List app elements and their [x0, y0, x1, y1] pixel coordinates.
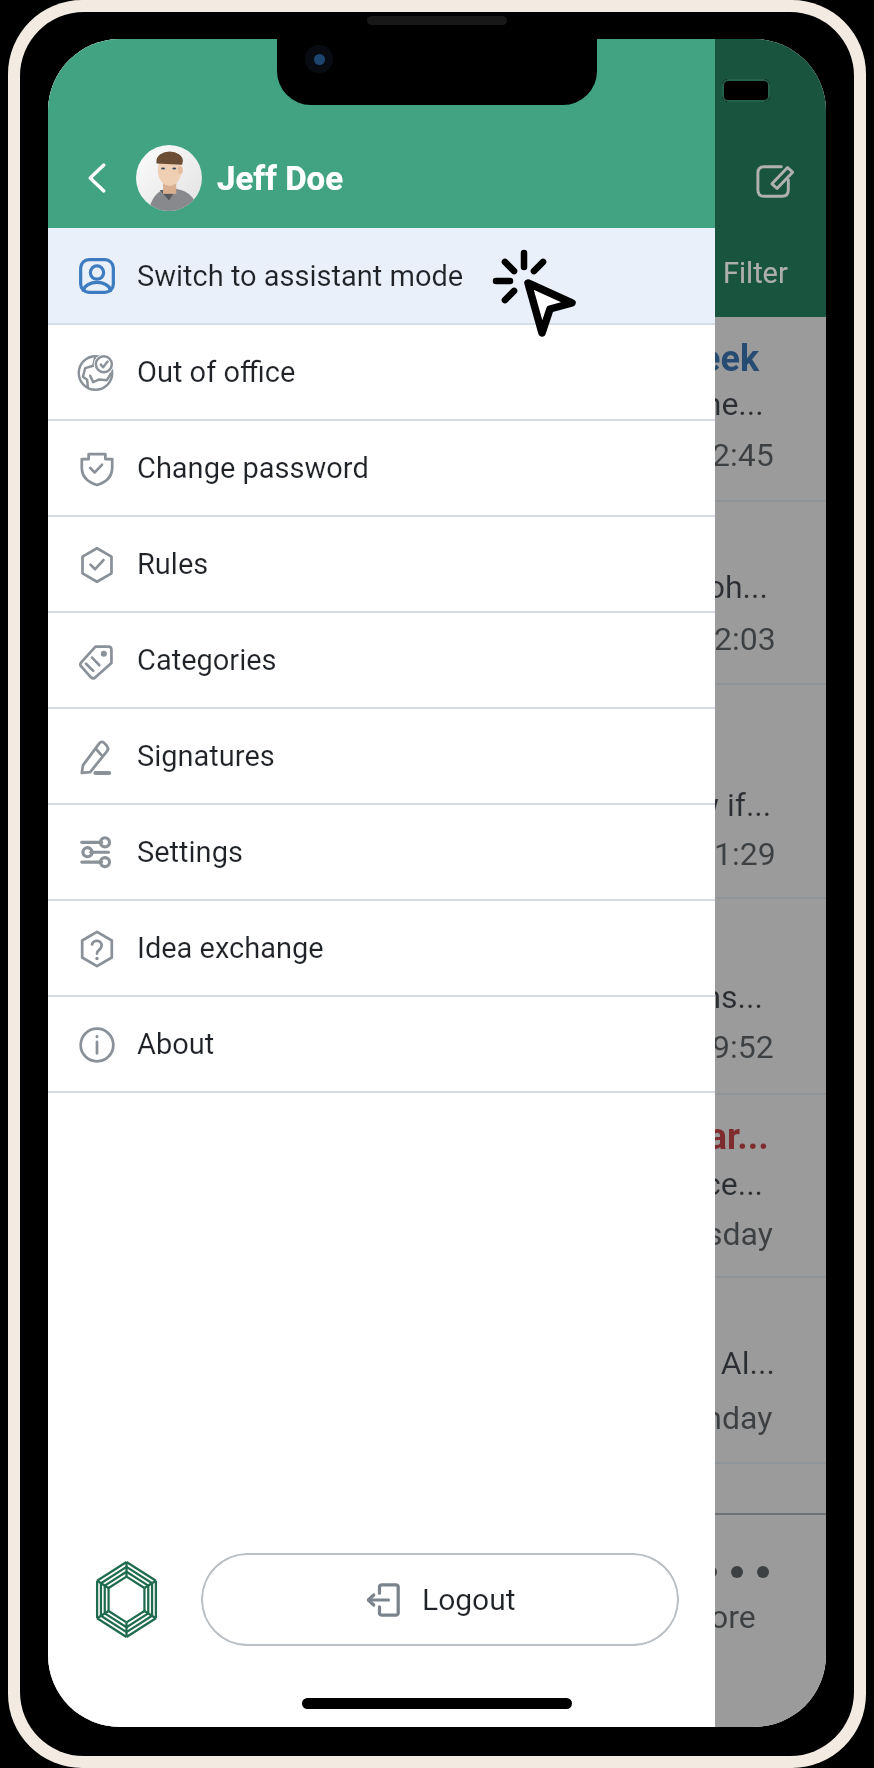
- staticText: 9:52: [712, 1028, 774, 1066]
- button[interactable]: Signatures: [48, 709, 715, 803]
- staticText: Change password: [137, 451, 369, 485]
- staticText: t. Al...: [694, 1344, 775, 1382]
- staticText: onday: [686, 1399, 773, 1437]
- button[interactable]: Change password: [48, 421, 715, 515]
- button[interactable]: Compose: [752, 160, 794, 202]
- button[interactable]: Categories: [48, 613, 715, 707]
- staticText: About: [137, 1027, 215, 1061]
- staticText: car...: [689, 1116, 769, 1158]
- staticText: Settings: [137, 835, 243, 869]
- button[interactable]: Settings: [48, 805, 715, 899]
- staticText: Categories: [137, 643, 277, 677]
- staticText: Switch to assistant mode: [137, 259, 464, 293]
- button[interactable]: About: [48, 997, 715, 1091]
- staticText: Jeff Doe: [217, 159, 344, 198]
- staticText: joh...: [699, 568, 768, 606]
- staticText: 12:03: [696, 620, 776, 658]
- staticText: 11:29: [696, 835, 776, 873]
- staticText: eek: [701, 338, 760, 380]
- button[interactable]: Out of office: [48, 325, 715, 419]
- staticText: esday: [689, 1215, 773, 1253]
- staticText: More: [682, 1598, 756, 1636]
- staticText: Idea exchange: [137, 931, 324, 965]
- staticText: 12:45: [694, 436, 774, 474]
- staticText: ms...: [693, 978, 763, 1016]
- staticText: Filter: [723, 256, 788, 290]
- staticText: ce...: [704, 1165, 764, 1203]
- staticText: w if...: [695, 786, 772, 824]
- button[interactable]: Rules: [48, 517, 715, 611]
- button[interactable]: Idea exchange: [48, 901, 715, 995]
- staticText: Logout: [422, 1582, 516, 1617]
- staticText: Rules: [137, 547, 209, 581]
- button[interactable]: Switch to assistant mode: [48, 228, 715, 323]
- staticText: Signatures: [137, 739, 275, 773]
- staticText: che...: [687, 385, 764, 423]
- button[interactable]: Logout: [201, 1553, 679, 1646]
- staticText: Out of office: [137, 355, 296, 389]
- button[interactable]: Back: [70, 151, 124, 205]
